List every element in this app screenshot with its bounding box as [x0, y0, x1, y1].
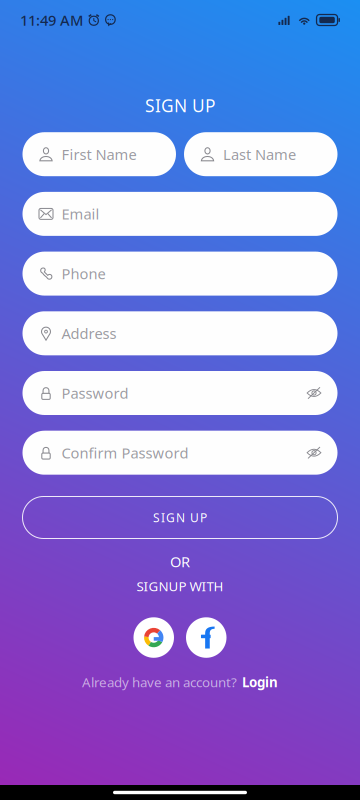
button[interactable]: Email — [22, 192, 337, 236]
staticText: Last Name — [223, 144, 296, 164]
button[interactable]: Sign up with Facebook — [186, 617, 226, 658]
staticText: Already have an account? — [82, 673, 237, 691]
staticText: Login — [242, 673, 278, 691]
staticText: OR — [170, 552, 190, 571]
staticText: S I G N U P — [153, 509, 207, 525]
button[interactable]: S I G N U P — [22, 496, 337, 538]
staticText: First Name — [61, 144, 136, 164]
staticText: Password — [61, 383, 128, 403]
button[interactable]: Last Name — [184, 132, 337, 176]
button[interactable]: First Name — [22, 132, 176, 176]
button[interactable]: Confirm Password — [22, 431, 337, 475]
staticText: 11:49 AM — [20, 10, 83, 30]
button[interactable]: Already have an account? — [0, 672, 360, 692]
button[interactable]: Address — [22, 311, 337, 355]
staticText: SIGN UP — [145, 94, 215, 117]
button[interactable]: Sign up with Google — [133, 617, 174, 658]
staticText: Email — [61, 204, 99, 224]
staticText: Confirm Password — [61, 443, 188, 462]
button[interactable]: Phone — [22, 252, 337, 296]
staticText: Address — [61, 324, 116, 343]
staticText: SIGNUP WITH — [136, 577, 223, 595]
button[interactable]: Password — [22, 371, 337, 415]
staticText: Phone — [61, 264, 105, 283]
